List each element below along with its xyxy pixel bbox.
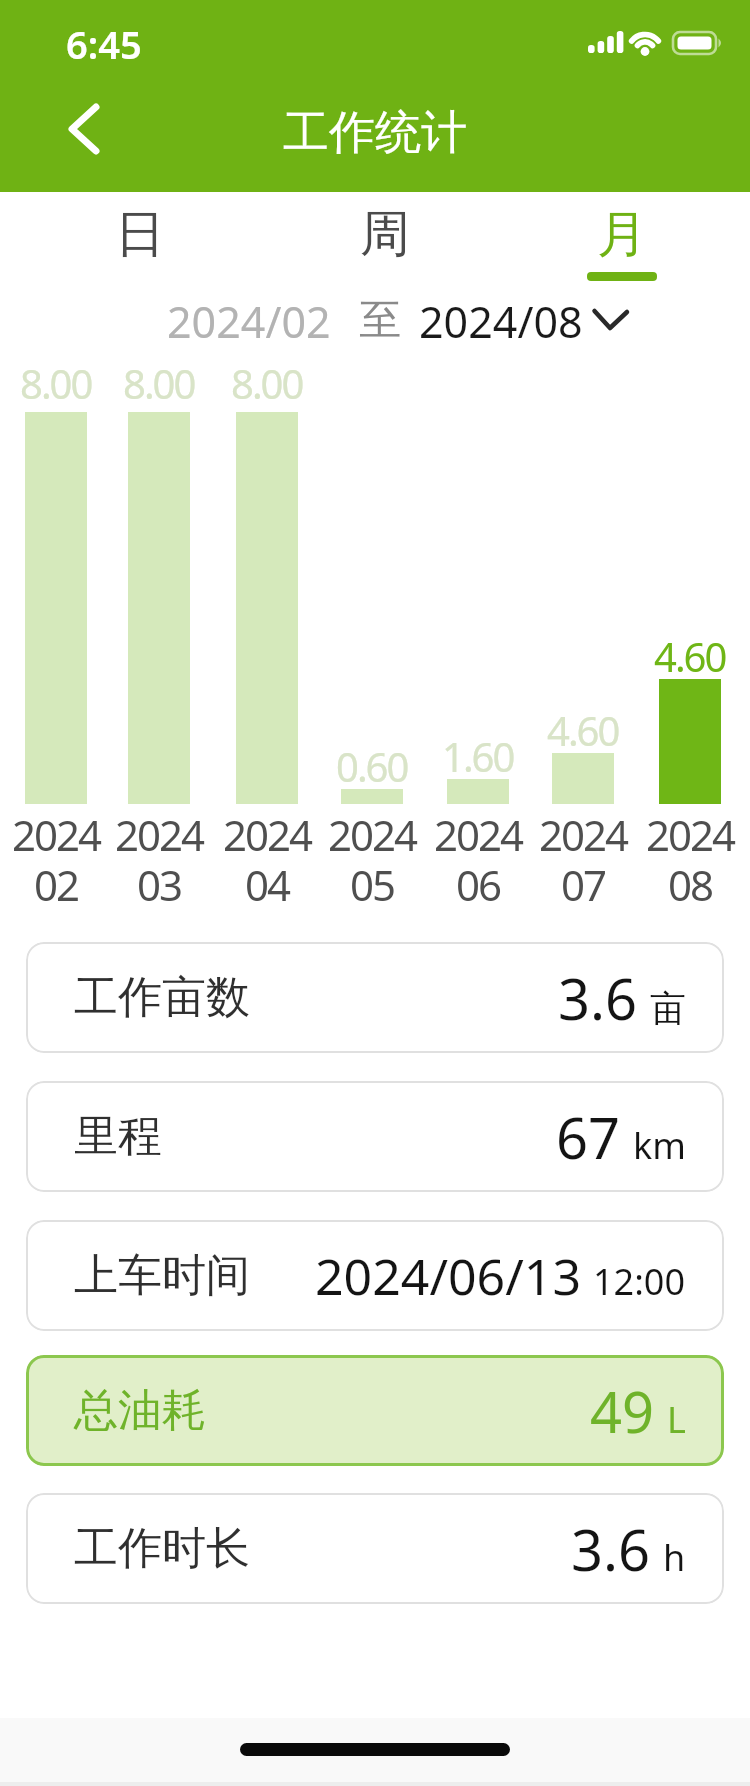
button[interactable]: 工作时长 (26, 1493, 724, 1604)
staticText: 2024/02 (167, 292, 331, 348)
staticText: 2024 (646, 806, 735, 863)
staticText: 至 (359, 294, 401, 347)
staticText: 3.6 (558, 960, 638, 1036)
staticText: 03 (137, 856, 182, 913)
button[interactable]: 周 (335, 198, 435, 270)
staticText: 2024 (115, 806, 204, 863)
staticText: 月 (597, 203, 647, 266)
staticText: 67 (556, 1099, 621, 1175)
staticText: 2024 (539, 806, 628, 863)
staticText: 4.60 (654, 629, 726, 683)
staticText: 2024 (328, 806, 417, 863)
staticText: 06 (456, 856, 501, 913)
staticText: 2024 (223, 806, 312, 863)
staticText: 8.00 (123, 356, 195, 410)
staticText: 2024/08 (419, 292, 583, 348)
staticText: 49 (590, 1373, 655, 1449)
button[interactable]: 2024/02 (0, 292, 750, 348)
button[interactable]: 工作亩数 (26, 942, 724, 1053)
staticText: h (663, 1533, 686, 1582)
staticText: 04 (245, 856, 290, 913)
button[interactable]: 上车时间 (26, 1220, 724, 1331)
staticText: 1.60 (442, 729, 514, 783)
staticText: km (633, 1121, 686, 1170)
staticText: 6:45 (66, 18, 142, 70)
staticText: 07 (561, 856, 606, 913)
staticText: 4.60 (547, 703, 619, 757)
staticText: 3.6 (571, 1511, 651, 1587)
staticText: 工作时长 (74, 1521, 250, 1576)
staticText: 总油耗 (74, 1383, 206, 1438)
button[interactable]: 日 (90, 198, 190, 270)
staticText: L (667, 1395, 686, 1444)
staticText: 2024 (434, 806, 523, 863)
staticText: 2024/06/13 (315, 1242, 581, 1310)
staticText: 周 (360, 203, 410, 266)
staticText: 8.00 (20, 356, 92, 410)
staticText: 8.00 (231, 356, 303, 410)
staticText: 08 (668, 856, 713, 913)
staticText: 上车时间 (74, 1248, 250, 1303)
staticText: 日 (115, 203, 165, 266)
staticText: 05 (350, 856, 395, 913)
button[interactable] (52, 96, 116, 160)
staticText: 02 (34, 856, 79, 913)
staticText: 里程 (74, 1109, 162, 1164)
staticText: 工作统计 (283, 104, 467, 162)
staticText: 12:00 (593, 1257, 686, 1306)
button[interactable]: 里程 (26, 1081, 724, 1192)
button[interactable]: 月 (572, 198, 672, 270)
staticText: 0.60 (336, 739, 408, 793)
button[interactable]: 总油耗 (26, 1355, 724, 1466)
staticText: 亩 (650, 986, 686, 1031)
staticText: 工作亩数 (74, 970, 250, 1025)
staticText: 2024 (12, 806, 101, 863)
